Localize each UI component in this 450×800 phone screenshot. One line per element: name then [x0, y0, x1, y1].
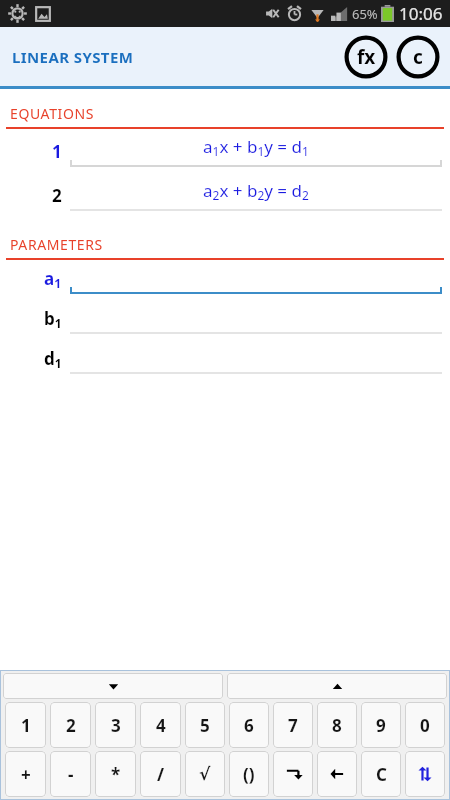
button[interactable]: 9 — [361, 702, 401, 748]
button[interactable]: Previous field — [227, 673, 447, 699]
button[interactable]: 2 — [0, 176, 450, 220]
button[interactable]: 1 — [0, 132, 450, 176]
button[interactable]: 4 — [140, 702, 181, 748]
staticText: * — [111, 763, 121, 786]
button[interactable]: 5 — [185, 702, 225, 748]
staticText: 1 — [21, 714, 31, 737]
staticText: a1x + b1y = d1 — [203, 135, 309, 160]
button[interactable]: d1 — [0, 343, 450, 383]
staticText: - — [68, 763, 74, 786]
button[interactable]: Functions — [344, 35, 388, 79]
button[interactable]: Enter — [273, 751, 313, 797]
button[interactable]: 2 — [50, 702, 91, 748]
staticText: 10:06 — [399, 2, 443, 25]
staticText: √ — [199, 764, 211, 784]
staticText: 2 — [66, 714, 76, 737]
button[interactable]: Swap — [405, 751, 445, 797]
staticText: EQUATIONS — [10, 104, 94, 123]
staticText: b1 — [44, 307, 62, 332]
staticText: 2 — [52, 184, 62, 207]
staticText: 1 — [52, 140, 62, 163]
staticText: c — [413, 44, 423, 70]
staticText: C — [376, 763, 387, 786]
button[interactable]: Backspace — [317, 751, 357, 797]
button[interactable]: () — [229, 751, 269, 797]
button[interactable]: + — [5, 751, 46, 797]
button[interactable]: Clear — [396, 35, 440, 79]
staticText: + — [21, 763, 31, 786]
staticText: 0 — [420, 714, 430, 737]
staticText: PARAMETERS — [10, 235, 103, 254]
staticText: LINEAR SYSTEM — [12, 47, 134, 67]
staticText: 9 — [376, 714, 386, 737]
button[interactable]: * — [95, 751, 136, 797]
button[interactable]: / — [140, 751, 181, 797]
staticText: 65% — [352, 5, 378, 23]
button[interactable]: - — [50, 751, 91, 797]
staticText: 5 — [200, 714, 210, 737]
staticText: a2x + b2y = d2 — [203, 179, 309, 204]
button[interactable]: 7 — [273, 702, 313, 748]
button[interactable]: C — [361, 751, 401, 797]
staticText: d1 — [44, 347, 62, 372]
button[interactable]: 3 — [95, 702, 136, 748]
button[interactable]: √ — [185, 751, 225, 797]
staticText: () — [243, 763, 255, 786]
button[interactable]: 1 — [5, 702, 46, 748]
staticText: fx — [357, 44, 376, 70]
button[interactable]: 6 — [229, 702, 269, 748]
button[interactable]: 0 — [405, 702, 445, 748]
staticText: 4 — [156, 714, 166, 737]
staticText: / — [157, 763, 165, 786]
button[interactable]: Next field — [3, 673, 223, 699]
staticText: 6 — [244, 714, 254, 737]
staticText: 7 — [288, 714, 298, 737]
button[interactable]: 8 — [317, 702, 357, 748]
button[interactable]: a1 — [0, 263, 450, 303]
staticText: a1 — [44, 267, 62, 292]
button[interactable]: b1 — [0, 303, 450, 343]
staticText: 8 — [332, 714, 342, 737]
staticText: 3 — [111, 714, 121, 737]
